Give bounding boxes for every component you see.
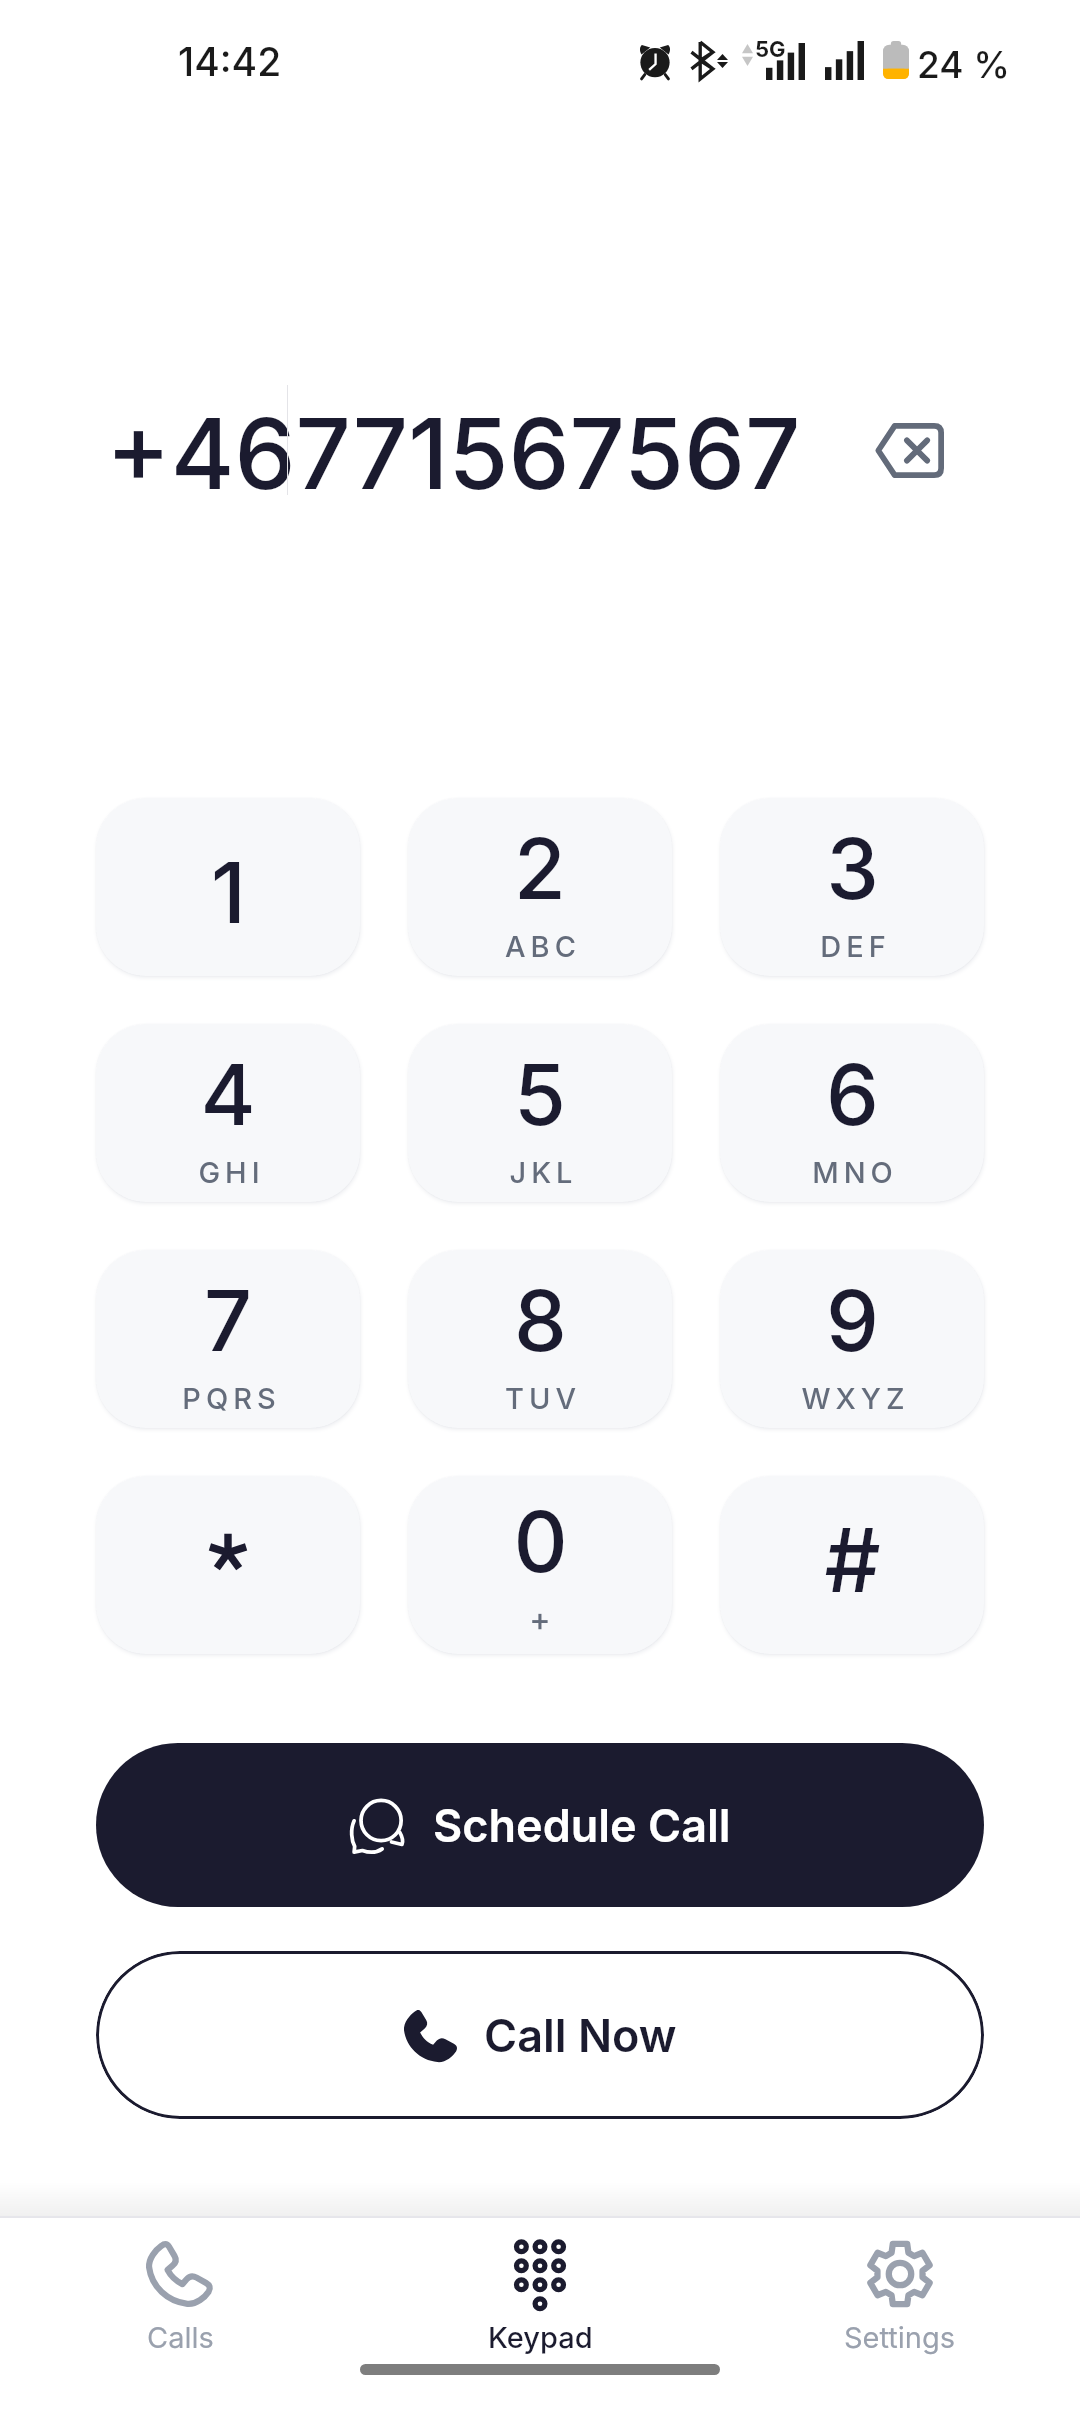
- staticText: TUV: [505, 1381, 581, 1416]
- button[interactable]: #: [720, 1476, 984, 1654]
- staticText: 24 %: [917, 42, 1011, 87]
- staticText: 2: [514, 818, 566, 920]
- button[interactable]: Schedule Call: [96, 1743, 984, 1907]
- staticText: 0: [513, 1491, 568, 1593]
- button[interactable]: [96, 1476, 360, 1654]
- button[interactable]: 2: [408, 798, 672, 976]
- button[interactable]: Call Now: [96, 1951, 984, 2119]
- staticText: +: [529, 1600, 551, 1639]
- staticText: 5: [514, 1044, 566, 1146]
- button[interactable]: 7: [96, 1250, 360, 1428]
- staticText: Schedule Call: [433, 1798, 731, 1852]
- button[interactable]: Calls: [0, 2218, 360, 2355]
- staticText: MNO: [812, 1155, 898, 1190]
- staticText: ABC: [505, 929, 581, 964]
- button[interactable]: 8: [408, 1250, 672, 1428]
- staticText: 4: [200, 1044, 256, 1146]
- button[interactable]: Keypad: [360, 2218, 720, 2355]
- staticText: 5G: [755, 36, 786, 63]
- button[interactable]: 0: [408, 1476, 672, 1654]
- staticText: 6: [826, 1044, 879, 1146]
- button[interactable]: Settings: [720, 2218, 1080, 2355]
- staticText: PQRS: [182, 1381, 281, 1416]
- staticText: 3: [826, 818, 879, 920]
- staticText: #: [824, 1507, 881, 1613]
- staticText: 9: [826, 1270, 879, 1372]
- staticText: 14:42: [178, 38, 282, 85]
- button[interactable]: 5: [408, 1024, 672, 1202]
- button[interactable]: Backspace: [865, 406, 953, 494]
- button[interactable]: 1: [96, 798, 360, 976]
- button[interactable]: 4: [96, 1024, 360, 1202]
- staticText: GHI: [198, 1155, 265, 1190]
- staticText: WXYZ: [801, 1381, 910, 1416]
- staticText: Call Now: [484, 2008, 677, 2062]
- staticText: Calls: [147, 2320, 214, 2355]
- staticText: Settings: [844, 2320, 956, 2355]
- staticText: DEF: [820, 929, 891, 964]
- staticText: Keypad: [488, 2320, 593, 2355]
- staticText: 8: [514, 1270, 567, 1372]
- staticText: 1: [211, 842, 246, 944]
- button[interactable]: 3: [720, 798, 984, 976]
- staticText: JKL: [509, 1155, 578, 1190]
- staticText: 7: [204, 1270, 252, 1372]
- button[interactable]: 9: [720, 1250, 984, 1428]
- staticText: +46771567567: [106, 395, 801, 505]
- button[interactable]: 6: [720, 1024, 984, 1202]
